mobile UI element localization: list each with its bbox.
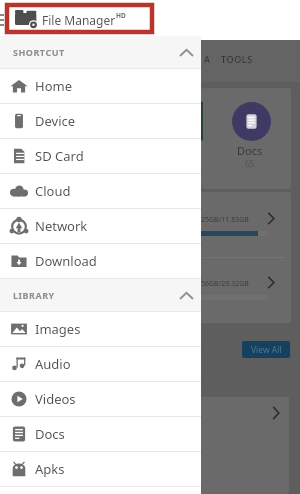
staticText: Docs <box>35 425 65 443</box>
staticText: Audio <box>35 355 71 373</box>
button[interactable]: Open navigation drawer <box>0 7 5 29</box>
staticText: Device <box>35 112 76 130</box>
staticText: 65 <box>245 158 255 169</box>
staticText: 25GB/11.83GB <box>201 215 249 225</box>
staticText: Home <box>35 77 72 95</box>
button[interactable]: 56GB/29.32GB <box>186 256 291 321</box>
button[interactable]: LIBRARY <box>0 279 201 311</box>
staticText: File Manager <box>42 12 116 28</box>
staticText: Docs <box>237 143 263 158</box>
other: File Manager <box>15 10 37 27</box>
button[interactable] <box>186 397 289 494</box>
button[interactable]: Device <box>0 104 201 138</box>
button[interactable]: Docs <box>203 88 291 189</box>
staticText: LIBRARY <box>13 289 55 301</box>
button[interactable]: Home <box>0 69 201 103</box>
button[interactable]: SHORTCUT <box>0 36 201 68</box>
staticText: SD Card <box>35 147 84 165</box>
staticText: Apks <box>35 460 65 478</box>
button[interactable]: Audio <box>0 347 201 381</box>
staticText: Network <box>35 217 88 235</box>
button[interactable]: Cloud <box>0 174 201 208</box>
staticText: SHORTCUT <box>13 46 65 58</box>
button[interactable]: Videos <box>0 382 201 416</box>
button[interactable]: View All <box>242 341 290 358</box>
button[interactable]: Download <box>0 244 201 278</box>
button[interactable]: 25GB/11.83GB <box>186 192 291 257</box>
button[interactable]: SD Card <box>0 139 201 173</box>
button[interactable]: A <box>204 53 210 65</box>
button[interactable]: Docs <box>0 417 201 451</box>
staticText: Images <box>35 320 81 338</box>
staticText: Download <box>35 252 97 270</box>
button[interactable]: TOOLS <box>221 53 253 65</box>
staticText: Videos <box>35 390 76 408</box>
button[interactable]: Network <box>0 209 201 243</box>
button[interactable]: Apks <box>0 452 201 486</box>
staticText: 56GB/29.32GB <box>201 279 249 289</box>
staticText: Cloud <box>35 182 71 200</box>
button[interactable]: Images <box>0 312 201 346</box>
staticText: View All <box>251 344 282 356</box>
staticText: HD <box>116 11 126 20</box>
